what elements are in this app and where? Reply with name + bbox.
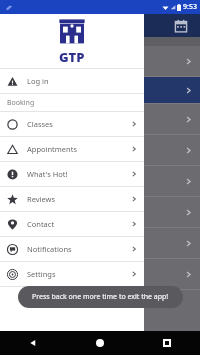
staticText: GTP [59, 48, 85, 66]
button[interactable] [0, 197, 200, 227]
staticText: Log in [27, 76, 49, 86]
button[interactable]: Appointments [0, 137, 144, 161]
button[interactable]: Contact [0, 212, 144, 236]
button[interactable] [0, 135, 200, 165]
button[interactable] [0, 104, 200, 134]
button[interactable] [0, 166, 200, 196]
button[interactable] [0, 259, 200, 289]
staticText: Booking [7, 98, 35, 108]
staticText: Settings [27, 269, 56, 279]
staticText: Appointments [27, 144, 78, 154]
button[interactable]: Reviews [0, 187, 144, 211]
staticText: Classes [27, 119, 53, 129]
button[interactable]: Log in [0, 69, 144, 93]
button[interactable]: Settings [0, 262, 144, 286]
button[interactable]: What's Hot! [0, 162, 144, 186]
button[interactable]: Back [0, 331, 66, 355]
button[interactable] [0, 46, 200, 76]
staticText: 9:53 [183, 2, 197, 12]
staticText: What's Hot! [27, 169, 68, 179]
button[interactable]: Recents [133, 331, 200, 355]
button[interactable]: Classes [0, 112, 144, 136]
button[interactable]: Calendar [174, 19, 188, 33]
staticText: Contact [27, 219, 55, 229]
staticText: Reviews [27, 194, 56, 204]
button[interactable] [0, 77, 200, 103]
button[interactable] [0, 228, 200, 258]
staticText: Notifications [27, 244, 72, 254]
button[interactable]: Notifications [0, 237, 144, 261]
button[interactable]: Home [66, 331, 133, 355]
staticText: Press back one more time to exit the app… [32, 292, 169, 302]
